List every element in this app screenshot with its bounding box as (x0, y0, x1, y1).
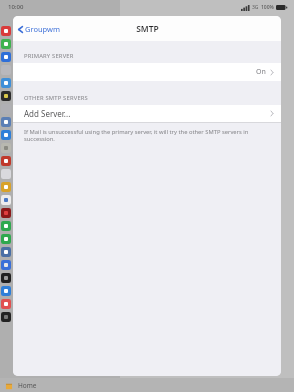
button[interactable]: App icon (1, 26, 11, 36)
button[interactable]: App icon (1, 299, 11, 309)
staticText: Add Server... (24, 108, 71, 119)
button[interactable]: App icon (1, 143, 11, 153)
button[interactable]: App icon (1, 182, 11, 192)
button[interactable]: App icon (1, 247, 11, 257)
staticText: 3G (252, 4, 259, 11)
staticText: Groupwm (25, 24, 60, 34)
button[interactable]: App icon (1, 221, 11, 231)
staticText: 10:00 (8, 3, 24, 11)
button[interactable]: App icon (1, 234, 11, 244)
button[interactable]: App icon (1, 39, 11, 49)
staticText: PRIMARY SERVER (24, 52, 74, 60)
button[interactable]: App icon (1, 130, 11, 140)
button[interactable]: Home (5, 381, 37, 390)
button[interactable]: App icon (1, 91, 11, 101)
button[interactable]: App icon (1, 273, 11, 283)
button[interactable]: App icon (1, 195, 11, 205)
staticText: 100% (261, 4, 274, 11)
button[interactable]: App icon (1, 169, 11, 179)
staticText: If Mail is unsuccessful using the primar… (24, 128, 271, 143)
button[interactable]: Groupwm (16, 21, 62, 37)
button[interactable]: App icon (1, 260, 11, 270)
button[interactable]: App icon (1, 78, 11, 88)
staticText: OTHER SMTP SERVERS (24, 94, 88, 102)
staticText: Home (18, 381, 37, 390)
button[interactable]: App icon (1, 52, 11, 62)
button[interactable]: App icon (1, 312, 11, 322)
button[interactable]: App icon (1, 117, 11, 127)
button[interactable]: Add Server... (13, 105, 281, 122)
button[interactable]: App icon (1, 286, 11, 296)
staticText: SMTP (136, 23, 159, 35)
button[interactable]: App icon (1, 156, 11, 166)
button[interactable]: On (13, 63, 281, 81)
button[interactable]: App icon (1, 208, 11, 218)
staticText: On (256, 67, 266, 77)
